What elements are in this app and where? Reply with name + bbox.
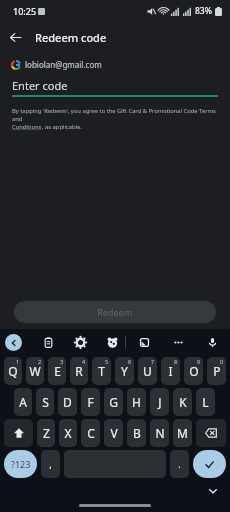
button[interactable]: X [59, 419, 77, 447]
staticText: B [133, 425, 141, 441]
button[interactable]: S [36, 388, 54, 416]
button[interactable]: Back [0, 22, 30, 52]
staticText: Enter code [12, 78, 68, 93]
staticText: , [49, 458, 52, 470]
staticText: E [54, 363, 61, 379]
button[interactable]: A [14, 388, 32, 416]
button[interactable]: K [173, 388, 192, 416]
staticText: 5 [105, 358, 109, 365]
staticText: 9 [197, 358, 201, 365]
button[interactable]: P [207, 357, 226, 385]
staticText: O [189, 363, 199, 379]
staticText: Redeem code [35, 30, 107, 45]
button[interactable]: C [81, 419, 100, 447]
staticText: M [177, 425, 188, 441]
button[interactable]: T [92, 357, 111, 385]
staticText: By tapping 'Redeem', you agree to the Gi… [12, 107, 218, 123]
button[interactable]: G [104, 388, 123, 416]
staticText: Y [121, 363, 128, 379]
button[interactable]: M [173, 419, 192, 447]
button[interactable]: Settings [70, 332, 90, 352]
staticText: U [143, 363, 152, 379]
button[interactable]: J [150, 388, 169, 416]
button[interactable]: U [138, 357, 157, 385]
staticText: ?123 [11, 458, 31, 470]
staticText: D [63, 394, 72, 410]
staticText: T [98, 363, 105, 379]
staticText: 1 [16, 358, 20, 365]
staticText: G [109, 394, 118, 410]
button[interactable]: Redeem [14, 301, 216, 323]
button[interactable]: V [104, 419, 123, 447]
button[interactable]: More options [168, 332, 188, 352]
staticText: N [155, 425, 165, 441]
button[interactable]: Y [115, 357, 134, 385]
staticText: I [168, 363, 173, 379]
staticText: W [29, 363, 41, 379]
staticText: R [75, 363, 83, 379]
button[interactable]: F [81, 388, 100, 416]
staticText: F [87, 394, 94, 410]
button[interactable]: , [41, 450, 60, 478]
button[interactable]: O [184, 357, 203, 385]
staticText: Redeem [97, 306, 133, 318]
staticText: 8 [174, 358, 178, 365]
staticText: 2 [38, 358, 42, 365]
button[interactable]: L [196, 388, 215, 416]
staticText: X [64, 425, 72, 441]
button[interactable]: Backspace [196, 419, 226, 447]
staticText: L [202, 394, 209, 410]
button[interactable]: ?123 [4, 450, 37, 478]
staticText: 83% [195, 5, 212, 17]
staticText: 3 [60, 358, 64, 365]
staticText: P [213, 363, 221, 379]
staticText: J [158, 394, 162, 410]
staticText: Z [43, 425, 50, 441]
staticText: , as applicable. [42, 123, 82, 131]
staticText: 4 [82, 358, 86, 365]
staticText: C [87, 425, 95, 441]
button[interactable]: Text editing [134, 332, 154, 352]
button[interactable]: Voice input [202, 332, 222, 352]
button[interactable]: W [26, 357, 44, 385]
button[interactable]: Collapse toolbar [5, 334, 22, 351]
button[interactable]: H [127, 388, 146, 416]
button[interactable]: Enter [193, 450, 226, 478]
button[interactable]: Stickers [102, 332, 122, 352]
staticText: A [19, 394, 27, 410]
button[interactable]: N [150, 419, 169, 447]
button[interactable]: R [70, 357, 88, 385]
button[interactable]: B [127, 419, 146, 447]
button[interactable]: . [170, 450, 189, 478]
button[interactable]: Hide keyboard [204, 482, 222, 500]
button[interactable]: I [161, 357, 180, 385]
button[interactable]: Clipboard [38, 332, 58, 352]
staticText: K [179, 394, 187, 410]
button[interactable]: D [58, 388, 77, 416]
staticText: Q [8, 363, 18, 379]
staticText: 6 [128, 358, 132, 365]
button[interactable]: Shift [4, 419, 33, 447]
staticText: 10:25 [13, 5, 37, 17]
staticText: . [178, 458, 181, 470]
staticText: 0 [220, 358, 224, 365]
staticText: V [110, 425, 118, 441]
staticText: lobiolan@gmail.com [25, 59, 102, 70]
staticText: S [42, 394, 49, 410]
button[interactable]: Z [37, 419, 55, 447]
staticText: H [132, 394, 141, 410]
button[interactable]: Conditions [12, 123, 42, 131]
button[interactable]: Q [4, 357, 22, 385]
button[interactable]: E [48, 357, 66, 385]
staticText: 7 [151, 358, 155, 365]
